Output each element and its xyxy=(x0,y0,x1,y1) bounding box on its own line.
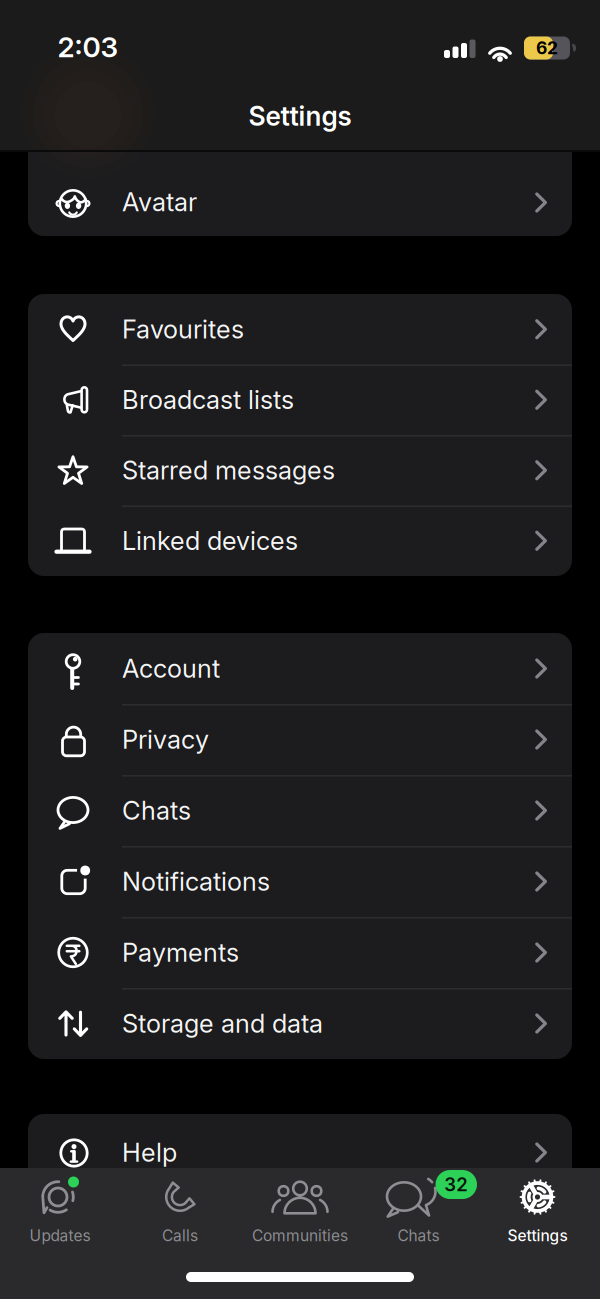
button[interactable]: Payments xyxy=(28,917,572,988)
staticText: Linked devices xyxy=(122,525,298,556)
button[interactable]: Communities xyxy=(240,1168,360,1258)
staticText: Account xyxy=(122,653,220,684)
button[interactable]: Avatar xyxy=(28,167,572,237)
staticText: Favourites xyxy=(122,314,244,345)
button[interactable]: Chats xyxy=(28,775,572,846)
staticText: Starred messages xyxy=(122,455,335,486)
button[interactable]: Privacy xyxy=(28,704,572,775)
button[interactable]: Broadcast lists xyxy=(28,364,572,435)
staticText: Help xyxy=(122,1137,177,1168)
button[interactable]: Updates xyxy=(0,1168,120,1258)
button[interactable]: Calls xyxy=(120,1168,240,1258)
staticText: 2:03 xyxy=(57,30,118,64)
staticText: Communities xyxy=(252,1226,348,1245)
button[interactable]: Starred messages xyxy=(28,435,572,505)
staticText: Updates xyxy=(29,1226,90,1245)
staticText: Chats xyxy=(397,1226,439,1245)
staticText: Settings xyxy=(507,1226,567,1245)
staticText: Calls xyxy=(162,1226,198,1245)
button[interactable]: Account xyxy=(28,633,572,704)
button[interactable]: Settings xyxy=(477,1168,597,1258)
staticText: 32 xyxy=(444,1173,468,1196)
staticText: 62 xyxy=(536,37,558,59)
staticText: Settings xyxy=(248,100,351,132)
button[interactable]: Notifications xyxy=(28,846,572,917)
staticText: Privacy xyxy=(122,724,209,755)
staticText: Notifications xyxy=(122,866,270,897)
staticText: Storage and data xyxy=(122,1008,323,1039)
button[interactable]: Help xyxy=(28,1117,572,1188)
button[interactable]: Favourites xyxy=(28,294,572,364)
button[interactable]: Linked devices xyxy=(28,505,572,576)
staticText: Chats xyxy=(122,795,191,826)
staticText: Payments xyxy=(122,937,239,968)
staticText: Avatar xyxy=(122,187,197,217)
button[interactable]: Storage and data xyxy=(28,988,572,1059)
button[interactable]: 32 xyxy=(358,1168,478,1258)
staticText: Broadcast lists xyxy=(122,384,294,415)
